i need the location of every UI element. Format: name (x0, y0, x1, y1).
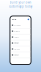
button[interactable]: Account (10, 22, 31, 28)
staticText: Build your own (9, 1, 31, 4)
staticText: Storage (14, 48, 20, 50)
button[interactable]: About (10, 52, 31, 58)
staticText: Detail (12, 18, 16, 20)
button[interactable]: Display (10, 40, 31, 46)
button[interactable]: Privacy (10, 28, 31, 34)
staticText: About (14, 54, 18, 56)
button[interactable]: Notices (10, 34, 31, 40)
button[interactable]: Storage (10, 46, 31, 52)
staticText: Display (14, 42, 19, 44)
staticText: Account (14, 24, 20, 26)
staticText: custom app today (9, 5, 32, 8)
staticText: Privacy (14, 30, 20, 32)
staticText: Notices (14, 36, 19, 38)
